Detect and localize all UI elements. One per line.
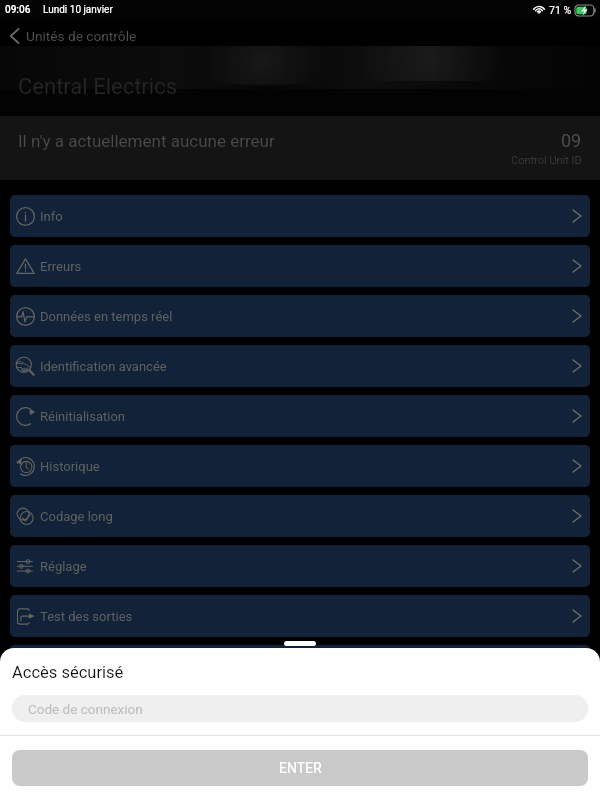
button[interactable]: Erreurs	[10, 245, 590, 287]
button[interactable]: Code de connexion	[12, 695, 588, 722]
button[interactable]: Réinitialisation	[10, 395, 590, 437]
button[interactable]: Données en temps réel	[10, 295, 590, 337]
button[interactable]: Historique	[10, 445, 590, 487]
button[interactable]: Réglage	[10, 545, 590, 587]
button[interactable]: Info	[10, 195, 590, 237]
button[interactable]: Retour: Unités de contrôle	[0, 23, 600, 49]
staticText: Il n'y a actuellement aucune erreur	[18, 131, 275, 151]
staticText: 71 %	[549, 4, 572, 16]
button[interactable]: Codage long	[10, 495, 590, 537]
staticText: 09:06	[5, 4, 31, 16]
staticText: Erreurs	[40, 259, 82, 274]
staticText: Test des sorties	[40, 609, 133, 624]
staticText: Lundi 10 janvier	[43, 4, 113, 16]
button[interactable]: Test des sorties	[10, 595, 590, 637]
staticText: Codage long	[40, 509, 113, 524]
staticText: Accès sécurisé	[12, 663, 124, 682]
staticText: Control Unit ID	[511, 154, 582, 167]
staticText: Mesures	[40, 659, 91, 674]
staticText: ENTER	[279, 760, 322, 776]
staticText: Central Electrics	[18, 74, 178, 100]
staticText: Réglage	[40, 559, 87, 574]
staticText: Réinitialisation	[40, 409, 126, 424]
staticText: Code de connexion	[28, 701, 143, 717]
staticText: Identification avancée	[40, 359, 167, 374]
button[interactable]: Identification avancée	[10, 345, 590, 387]
staticText: Info	[40, 209, 63, 224]
staticText: Données en temps réel	[40, 309, 173, 324]
staticText: 09	[561, 130, 582, 151]
button[interactable]: Mesures	[10, 645, 590, 687]
staticText: Historique	[40, 459, 100, 474]
button[interactable]: ENTER	[12, 750, 588, 786]
staticText: Unités de contrôle	[26, 28, 137, 44]
